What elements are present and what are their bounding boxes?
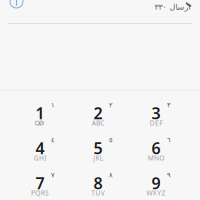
button[interactable]: 7 [12, 172, 68, 200]
staticText: ٥ [109, 136, 113, 144]
staticText: ABC [92, 119, 104, 127]
button[interactable]: 3 [128, 102, 184, 136]
staticText: ٨ [109, 171, 113, 179]
button[interactable]: 8 [70, 172, 126, 200]
staticText: 4 [35, 137, 44, 159]
staticText: ارسال ۳۳۰ [154, 2, 190, 12]
staticText: ٩ [167, 171, 171, 179]
staticText: JKL [93, 154, 103, 162]
staticText: TUV [91, 189, 105, 197]
staticText: 3 [151, 102, 160, 124]
staticText: i [15, 0, 18, 9]
button[interactable]: 2 [70, 102, 126, 136]
staticText: DEF [150, 119, 162, 127]
staticText: 2 [93, 102, 102, 124]
staticText: ٢ [109, 101, 113, 109]
button[interactable]: 4 [12, 137, 68, 171]
button[interactable]: Info [10, 0, 23, 8]
staticText: 7 [35, 172, 44, 194]
staticText: ٤ [51, 136, 55, 144]
staticText: MNO [148, 154, 164, 162]
staticText: GHI [34, 154, 46, 162]
button[interactable]: 5 [70, 137, 126, 171]
staticText: ٦ [167, 136, 171, 144]
staticText: 5 [93, 137, 102, 159]
staticText: ١ [51, 101, 55, 109]
button[interactable]: 9 [128, 172, 184, 200]
button[interactable]: 1 [12, 102, 68, 136]
button[interactable]: 6 [128, 137, 184, 171]
staticText: ٧ [51, 171, 55, 179]
staticText: PQRS [31, 189, 49, 197]
staticText: WXYZ [146, 189, 165, 197]
staticText: 1 [35, 102, 44, 124]
staticText: 8 [93, 172, 102, 194]
staticText: 6 [151, 137, 160, 159]
staticText: 9 [151, 172, 160, 194]
staticText: ٣ [167, 101, 171, 109]
